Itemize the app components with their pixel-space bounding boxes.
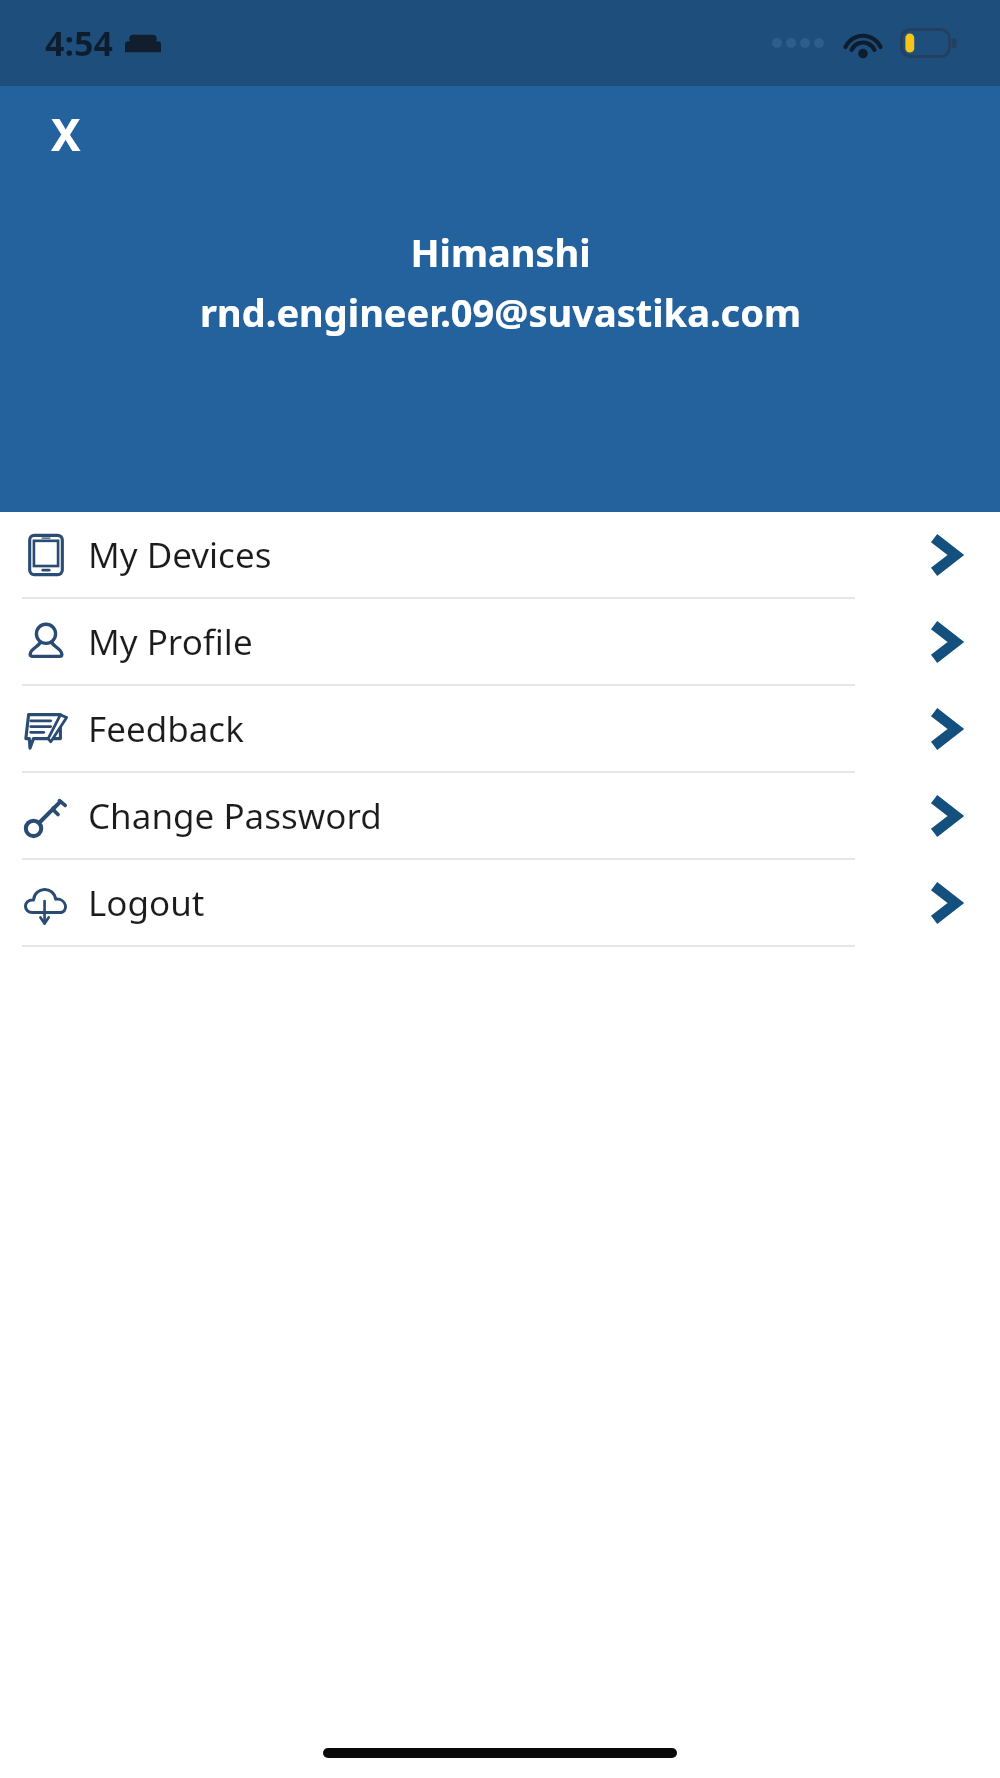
button[interactable]: My Profile xyxy=(0,599,1000,686)
button[interactable]: My Devices xyxy=(0,512,1000,599)
button[interactable]: Feedback xyxy=(0,686,1000,773)
staticText: My Devices xyxy=(88,531,272,579)
staticText: Feedback xyxy=(88,705,244,753)
staticText: Himanshi xyxy=(410,226,591,278)
staticText: Change Password xyxy=(88,792,382,840)
button[interactable]: Logout xyxy=(0,860,1000,947)
staticText: My Profile xyxy=(88,618,253,666)
staticText: Logout xyxy=(88,879,205,927)
staticText: rnd.engineer.09@suvastika.com xyxy=(200,286,801,338)
staticText: X xyxy=(51,104,81,164)
staticText: 4:54 xyxy=(45,20,113,66)
button[interactable]: Close xyxy=(34,102,98,166)
button[interactable]: Change Password xyxy=(0,773,1000,860)
